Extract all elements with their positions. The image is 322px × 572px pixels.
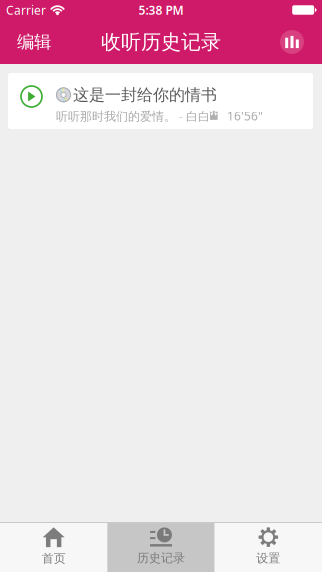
button[interactable]: 播放器: [268, 20, 322, 64]
staticText: 历史记录: [137, 550, 185, 565]
button[interactable]: 历史记录: [107, 523, 215, 572]
button[interactable]: 这是一封给你的情书: [8, 73, 313, 129]
staticText: 编辑: [17, 31, 51, 53]
staticText: 听听那时我们的爱情。 - 白白: [56, 108, 210, 124]
staticText: 这是一封给你的情书: [73, 85, 217, 105]
button[interactable]: 设置: [215, 523, 322, 572]
staticText: 收听历史记录: [101, 30, 221, 54]
staticText: Carrier: [6, 2, 46, 18]
button[interactable]: 编辑: [0, 20, 63, 64]
staticText: 16'56": [227, 108, 263, 124]
staticText: 5:38 PM: [138, 2, 183, 18]
staticText: 首页: [42, 551, 66, 566]
staticText: 设置: [256, 551, 280, 566]
button[interactable]: 首页: [0, 523, 107, 572]
